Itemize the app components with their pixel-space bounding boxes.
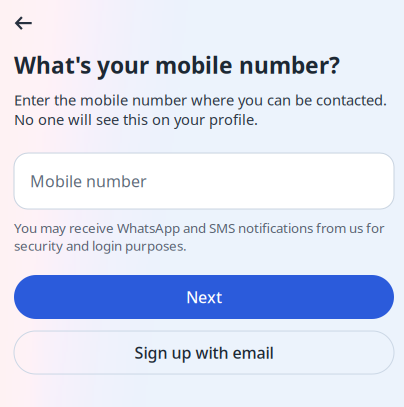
staticText: Sign up with email: [134, 342, 273, 363]
staticText: You may receive WhatsApp and SMS notific…: [14, 219, 385, 254]
staticText: Next: [186, 286, 222, 308]
button[interactable]: Mobile number: [14, 153, 394, 209]
button[interactable]: Next: [14, 275, 394, 319]
staticText: What's your mobile number?: [14, 50, 340, 80]
staticText: Mobile number: [30, 170, 147, 192]
button[interactable]: Back: [0, 10, 49, 38]
button[interactable]: Sign up with email: [14, 331, 394, 374]
staticText: Enter the mobile number where you can be…: [14, 90, 387, 129]
